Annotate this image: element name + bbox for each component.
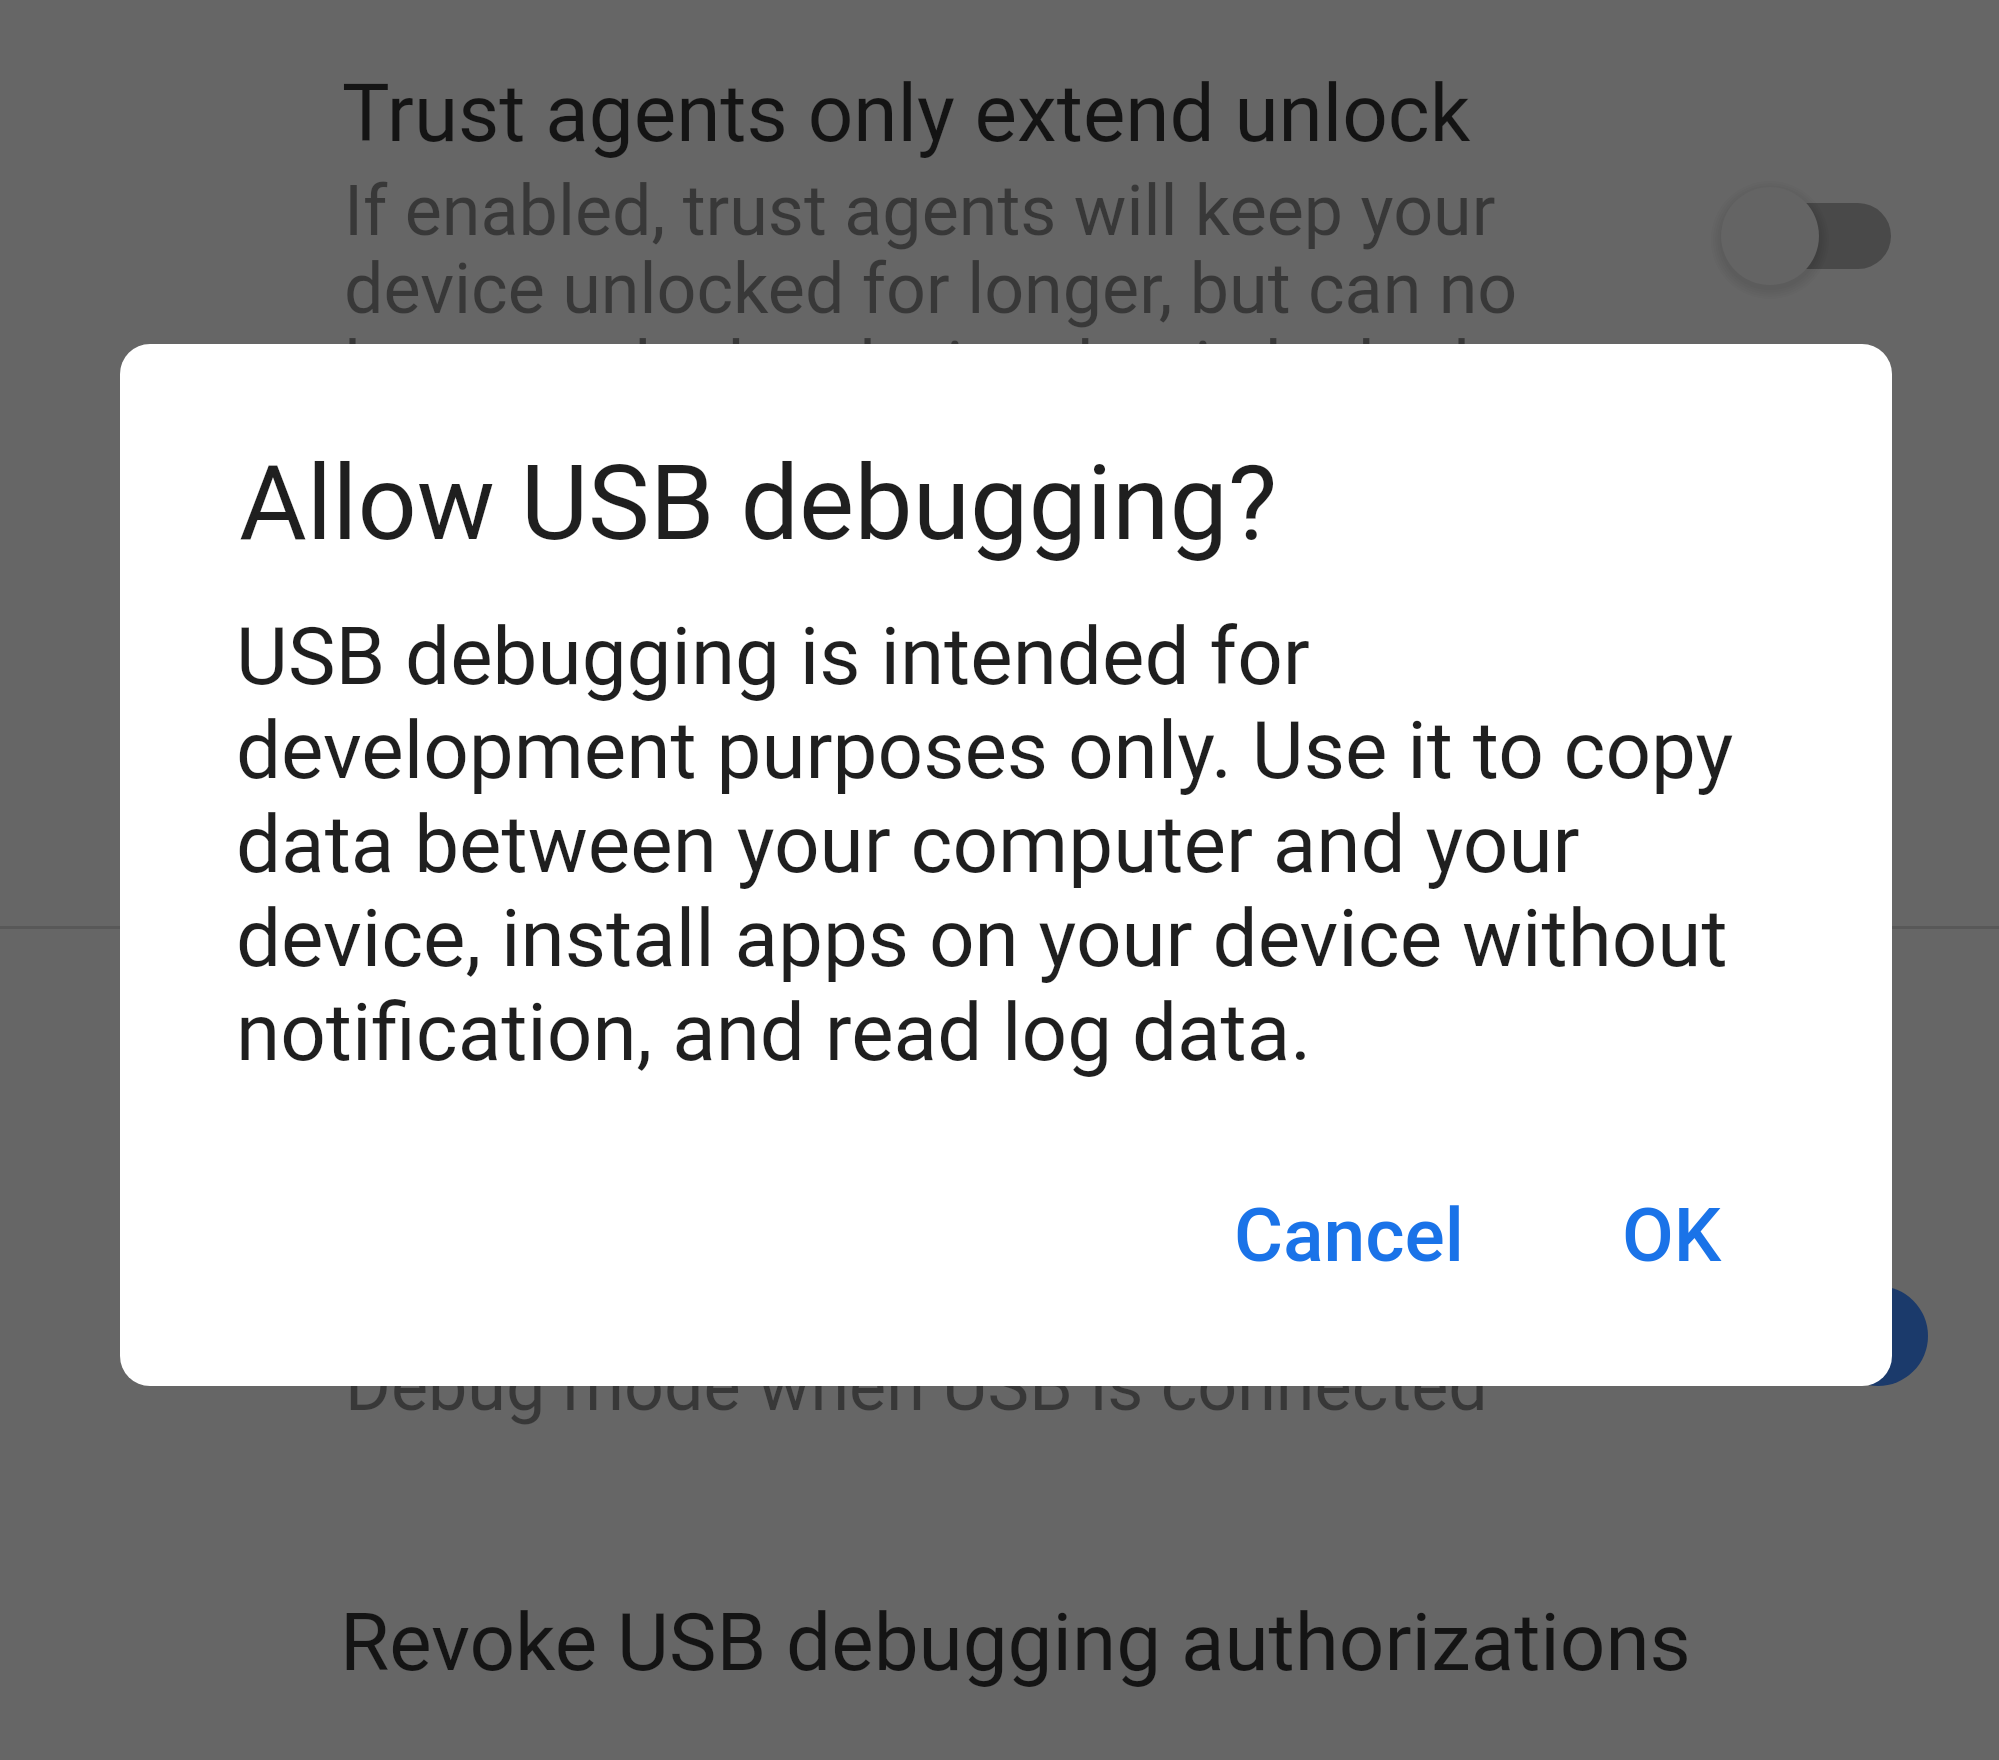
button[interactable]: Revoke USB debugging authorizations (0, 1530, 1999, 1760)
button[interactable]: OK (1582, 1129, 1752, 1289)
staticText: Debug mode when USB is connected (345, 1345, 1488, 1427)
button[interactable]: Debug mode when USB is connected (0, 1230, 1999, 1460)
staticText: Revoke USB debugging authorizations (340, 1596, 1691, 1690)
staticText: Trust agents only extend unlock (342, 67, 1471, 161)
staticText: Cancel (1234, 1191, 1465, 1279)
button[interactable]: Trust agents only extend unlock (0, 0, 1999, 430)
staticText: OK (1622, 1191, 1722, 1279)
other: USB debugging switch, on (1828, 1286, 1928, 1386)
staticText: If enabled, trust agents will keep your … (344, 170, 1518, 408)
staticText: USB debugging is intended for developmen… (236, 610, 1772, 1080)
staticText: Allow USB debugging? (239, 443, 1278, 565)
button[interactable]: Cancel (1194, 1129, 1478, 1289)
other: Trust agents switch, off (1700, 166, 1910, 306)
